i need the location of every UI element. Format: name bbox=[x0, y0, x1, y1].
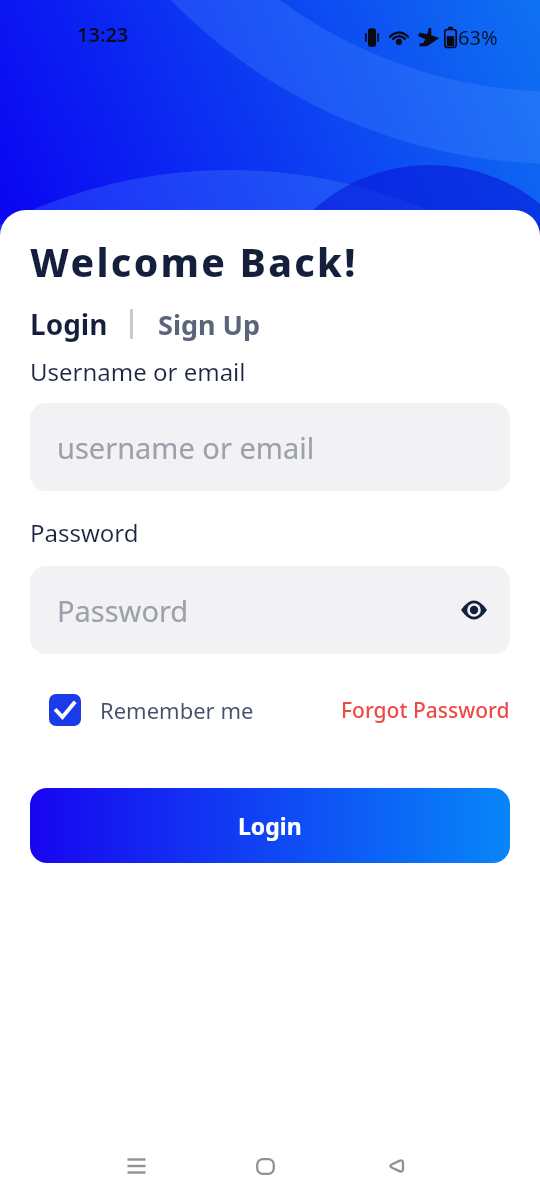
button[interactable]: Login bbox=[30, 305, 108, 343]
button[interactable]: username or email bbox=[30, 403, 510, 491]
staticText: Password bbox=[30, 516, 139, 549]
button[interactable] bbox=[126, 1158, 149, 1176]
button[interactable]: Password bbox=[30, 566, 510, 654]
button[interactable]: Forgot Password bbox=[341, 696, 510, 725]
staticText: 63% bbox=[458, 24, 498, 51]
staticText: Remember me bbox=[100, 695, 254, 725]
button[interactable]: Remember me bbox=[30, 694, 254, 726]
staticText: Forgot Password bbox=[341, 696, 510, 725]
staticText: Login bbox=[238, 810, 302, 841]
staticText: Username or email bbox=[30, 355, 246, 388]
staticText: Welcome Back! bbox=[30, 235, 358, 288]
staticText: Sign Up bbox=[158, 306, 261, 343]
button[interactable] bbox=[386, 1157, 405, 1175]
staticText: username or email bbox=[57, 428, 315, 467]
staticText: 13:23 bbox=[77, 21, 129, 48]
button[interactable]: Sign Up bbox=[158, 306, 261, 343]
staticText: Password bbox=[57, 591, 189, 630]
button[interactable] bbox=[256, 1158, 275, 1175]
staticText: Login bbox=[30, 305, 108, 343]
button[interactable]: Login bbox=[30, 788, 510, 863]
